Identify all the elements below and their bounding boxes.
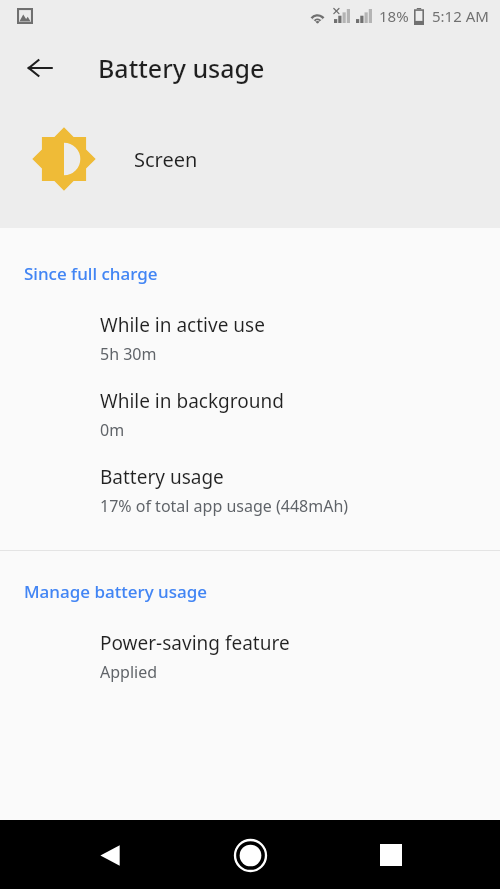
- button[interactable]: Recent apps: [360, 824, 422, 886]
- button[interactable]: Screen: [0, 104, 500, 214]
- button[interactable]: While in background: [0, 377, 500, 453]
- button[interactable]: Power-saving feature: [0, 619, 500, 695]
- button[interactable]: Manage battery usage: [0, 578, 500, 605]
- staticText: Applied: [100, 661, 158, 683]
- button[interactable]: Navigate up: [16, 44, 64, 92]
- staticText: Since full charge: [24, 262, 158, 285]
- staticText: 18%: [379, 6, 409, 26]
- button[interactable]: Battery usage: [0, 453, 500, 529]
- staticText: Battery usage: [100, 464, 224, 490]
- staticText: Screen: [134, 146, 198, 173]
- staticText: While in active use: [100, 312, 265, 338]
- button[interactable]: While in active use: [0, 301, 500, 377]
- button[interactable]: Back: [79, 824, 141, 886]
- staticText: 0m: [100, 419, 125, 441]
- button[interactable]: Home: [219, 824, 281, 886]
- staticText: While in background: [100, 388, 284, 414]
- staticText: 5h 30m: [100, 343, 157, 365]
- button[interactable]: Since full charge: [0, 260, 500, 287]
- staticText: Manage battery usage: [24, 580, 208, 603]
- staticText: Power-saving feature: [100, 630, 290, 656]
- staticText: Battery usage: [98, 51, 265, 85]
- staticText: 5:12 AM: [432, 6, 489, 26]
- staticText: 17% of total app usage (448mAh): [100, 495, 349, 517]
